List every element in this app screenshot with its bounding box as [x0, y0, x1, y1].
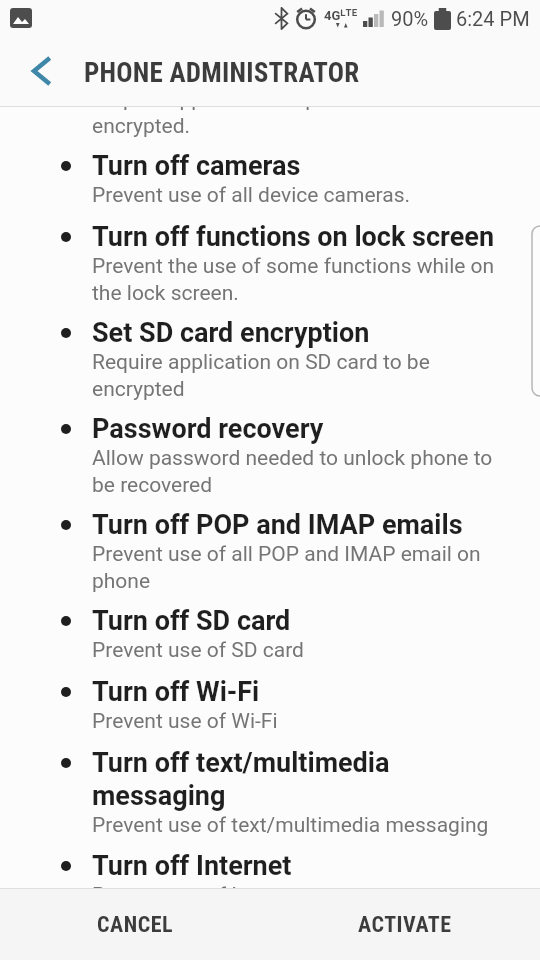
staticText: 4Gᴸᵀᴱ — [324, 8, 358, 23]
staticText: Prevent use of all device cameras. — [92, 183, 411, 208]
staticText: Prevent use of all POP and IMAP email on… — [92, 542, 481, 594]
staticText: CANCEL — [97, 912, 174, 938]
staticText: Prevent the use of some functions while … — [92, 254, 495, 306]
staticText: Turn off functions on lock screen — [92, 221, 495, 253]
staticText: Require application on SD card to be enc… — [92, 350, 430, 402]
staticText: Turn off Internet — [92, 850, 292, 882]
staticText: Require application on phone to be encry… — [92, 107, 416, 139]
staticText: Set SD card encryption — [92, 317, 370, 349]
staticText: 6:24 PM — [456, 7, 530, 30]
staticText: Turn off Wi-Fi — [92, 676, 260, 708]
staticText: Turn off text/multimedia messaging — [92, 747, 390, 812]
staticText: Prevent use of text/multimedia messaging — [92, 813, 489, 838]
staticText: Prevent use of SD card — [92, 638, 304, 663]
staticText: Turn off cameras — [92, 150, 301, 182]
staticText: ACTIVATE — [358, 912, 452, 938]
staticText: Password recovery — [92, 413, 324, 445]
staticText: 90% — [391, 7, 429, 30]
staticText: PHONE ADMINISTRATOR — [84, 57, 360, 89]
staticText: Prevent use of Wi-Fi — [92, 709, 278, 734]
staticText: Prevent use of Internet — [92, 883, 304, 888]
staticText: Turn off SD card — [92, 605, 291, 637]
staticText: Turn off POP and IMAP emails — [92, 509, 463, 541]
staticText: Allow password needed to unlock phone to… — [92, 446, 493, 498]
